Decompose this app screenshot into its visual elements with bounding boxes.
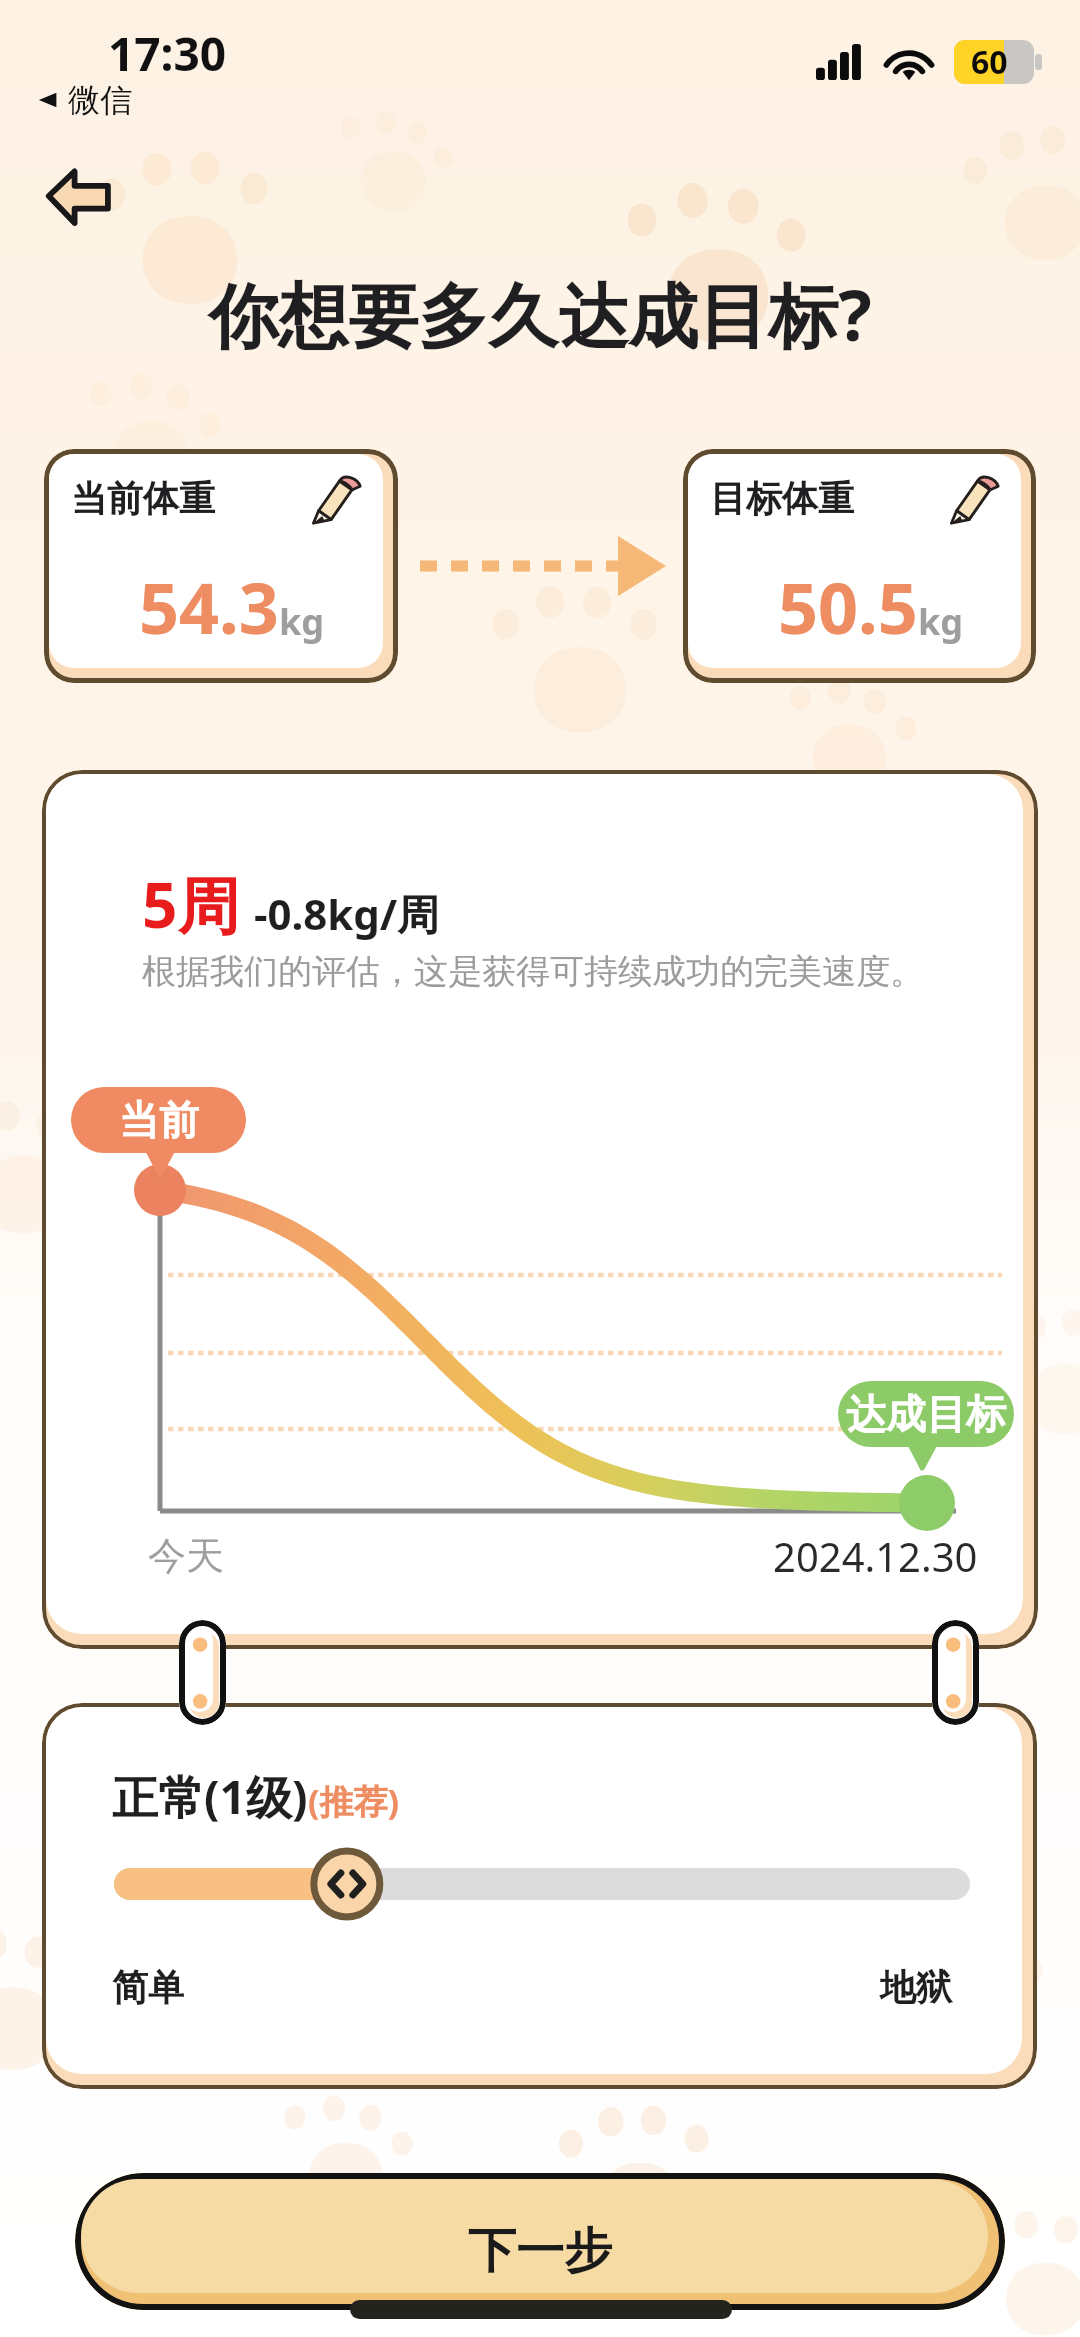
- staticText: 你想要多久达成目标?: [0, 266, 1080, 362]
- staticText: 微信: [68, 80, 132, 120]
- staticText: 根据我们的评估，这是获得可持续成功的完美速度。: [142, 950, 924, 993]
- staticText: 60: [971, 40, 1008, 84]
- staticText: 简单: [112, 1965, 184, 2010]
- staticText: 下一步: [468, 2221, 612, 2281]
- staticText: kg: [918, 597, 964, 646]
- staticText: 当前体重: [71, 476, 215, 521]
- button[interactable]: Back: [44, 166, 112, 226]
- button[interactable]: 当前体重: [44, 449, 398, 683]
- staticText: 目标体重: [710, 476, 854, 521]
- staticText: 54.3: [139, 559, 279, 654]
- staticText: 2024.12.30: [773, 1529, 978, 1583]
- staticText: (推荐): [308, 1778, 400, 1824]
- staticText: 50.5: [778, 559, 918, 654]
- button[interactable]: Edit 当前体重: [309, 472, 361, 524]
- button[interactable]: 下一步: [75, 2173, 1005, 2310]
- staticText: 正常(1级): [112, 1765, 308, 1828]
- staticText: 今天: [148, 1532, 224, 1580]
- staticText: kg: [279, 597, 325, 646]
- staticText: 17:30: [108, 22, 227, 85]
- staticText: 5周: [142, 862, 240, 947]
- button[interactable]: Edit 目标体重: [947, 472, 999, 524]
- staticText: -0.8kg/周: [254, 885, 440, 942]
- staticText: 地狱: [880, 1965, 952, 2010]
- button[interactable]: Difficulty slider: [102, 1843, 982, 1925]
- staticText: 达成目标: [846, 1389, 1006, 1439]
- button[interactable]: 目标体重: [683, 449, 1036, 683]
- staticText: 当前: [119, 1095, 199, 1145]
